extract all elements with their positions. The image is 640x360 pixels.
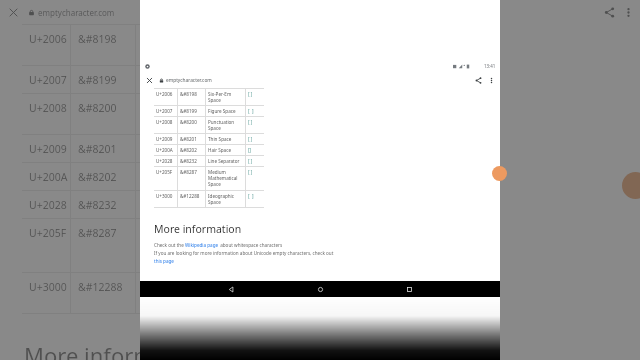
staticText: [ ]	[210, 142, 220, 156]
button[interactable]: U+2009	[154, 134, 264, 144]
staticText: Check out the	[154, 242, 185, 248]
staticText: &#8287	[180, 169, 197, 175]
button[interactable]: U+2007	[22, 66, 245, 93]
staticText: Thin Space	[208, 136, 232, 142]
staticText: &#8202	[180, 147, 197, 153]
staticText: [ ]	[210, 198, 220, 212]
staticText: [ ]	[248, 169, 253, 175]
button[interactable]: U+2006	[22, 25, 245, 65]
staticText: U+2008	[156, 119, 173, 125]
staticText: emptycharacter.com	[38, 7, 115, 18]
staticText: More information	[154, 222, 242, 236]
staticText: Ideographic Space	[208, 193, 235, 205]
button[interactable]: U+3000	[154, 191, 264, 207]
staticText: &#8201	[78, 142, 117, 156]
button[interactable]: U+200A	[154, 145, 264, 155]
staticText: [ ]	[248, 193, 254, 199]
button[interactable]: Share	[472, 74, 485, 87]
button[interactable]: More options	[485, 74, 498, 87]
staticText: U+2009	[156, 136, 173, 142]
staticText: Line Separator	[143, 198, 202, 218]
button[interactable]: U+2008	[22, 94, 245, 134]
staticText: &#8202	[78, 170, 117, 184]
button[interactable]: U+205F	[154, 167, 264, 190]
staticText: Six-Per-Em Space	[208, 91, 232, 103]
staticText: &#8287	[78, 226, 117, 240]
staticText: [ ]	[248, 136, 253, 142]
button[interactable]: U+2028	[22, 191, 245, 218]
staticText: U+3000	[29, 280, 67, 294]
staticText: [ ]	[210, 73, 223, 87]
staticText: 13:41	[484, 63, 496, 69]
button[interactable]: Recents	[401, 281, 417, 297]
staticText: [ ]	[210, 226, 220, 240]
button[interactable]: U+2006	[154, 89, 264, 105]
staticText: U+2007	[156, 108, 173, 114]
button[interactable]: U+2009	[22, 135, 245, 162]
staticText: More information	[24, 340, 207, 360]
button[interactable]: Close	[143, 74, 156, 87]
staticText: Line Separator	[208, 158, 240, 164]
staticText: &#12288	[180, 193, 200, 199]
staticText: U+2008	[29, 101, 67, 115]
staticText: Figure Space	[143, 73, 202, 93]
staticText: Punctuation Space	[208, 119, 235, 131]
staticText: &#8201	[180, 136, 197, 142]
staticText: &#8198	[180, 91, 197, 97]
staticText: Thin Space	[143, 142, 197, 156]
staticText: &#8200	[180, 119, 197, 125]
staticText: Ideographic Space	[143, 280, 202, 313]
staticText: Medium Mathematical Space	[208, 169, 238, 187]
staticText: U+2006	[156, 91, 173, 97]
button[interactable]: Back	[223, 281, 239, 297]
staticText: U+2028	[29, 198, 67, 212]
button[interactable]: U+205F	[22, 219, 245, 272]
staticText: []	[248, 147, 252, 153]
staticText: about whitespace characters	[219, 242, 283, 248]
staticText: U+200A	[156, 147, 173, 153]
button[interactable]: More options	[619, 3, 638, 22]
staticText: [ ]	[248, 119, 253, 125]
staticText: U+2006	[29, 32, 67, 46]
staticText: [ ]	[210, 101, 220, 115]
staticText: Medium Mathematical Space	[143, 226, 202, 266]
button[interactable]: U+2007	[154, 106, 264, 116]
button[interactable]: Wikipedia page	[185, 242, 219, 248]
staticText: U+2028	[156, 158, 173, 164]
staticText: &#8199	[180, 108, 197, 114]
staticText: &#12288	[78, 280, 123, 294]
staticText: &#8232	[180, 158, 197, 164]
staticText: &#8198	[78, 32, 117, 46]
staticText: &#8200	[78, 101, 117, 115]
staticText: U+2007	[29, 73, 67, 87]
staticText: []	[210, 170, 217, 184]
staticText: [ ]	[210, 280, 223, 294]
staticText: [ ]	[248, 91, 253, 97]
staticText: emptycharacter.com	[166, 77, 212, 84]
staticText: &#8232	[78, 198, 117, 212]
button[interactable]: this page	[154, 258, 174, 264]
staticText: [ ]	[248, 158, 253, 164]
staticText: Punctuation Space	[143, 101, 202, 134]
button[interactable]: U+3000	[22, 273, 245, 313]
staticText: U+205F	[156, 169, 173, 175]
staticText: Wikipedia page	[185, 242, 219, 248]
staticText: U+205F	[29, 226, 67, 240]
staticText: U+3000	[156, 193, 173, 199]
button[interactable]: Share	[600, 3, 619, 22]
staticText: &#8199	[78, 73, 117, 87]
staticText: this page	[154, 258, 174, 264]
button[interactable]: U+2028	[154, 156, 264, 166]
staticText: If you are looking for more information …	[154, 250, 334, 256]
button[interactable]: Action	[622, 172, 640, 199]
staticText: Figure Space	[208, 108, 236, 114]
button[interactable]: U+200A	[22, 163, 245, 190]
button[interactable]: Close	[4, 3, 23, 22]
staticText: Hair Space	[208, 147, 231, 153]
button[interactable]: U+2008	[154, 117, 264, 133]
staticText: Hair Space	[143, 170, 196, 184]
button[interactable]: Home	[312, 281, 328, 297]
staticText: [ ]	[248, 108, 254, 114]
